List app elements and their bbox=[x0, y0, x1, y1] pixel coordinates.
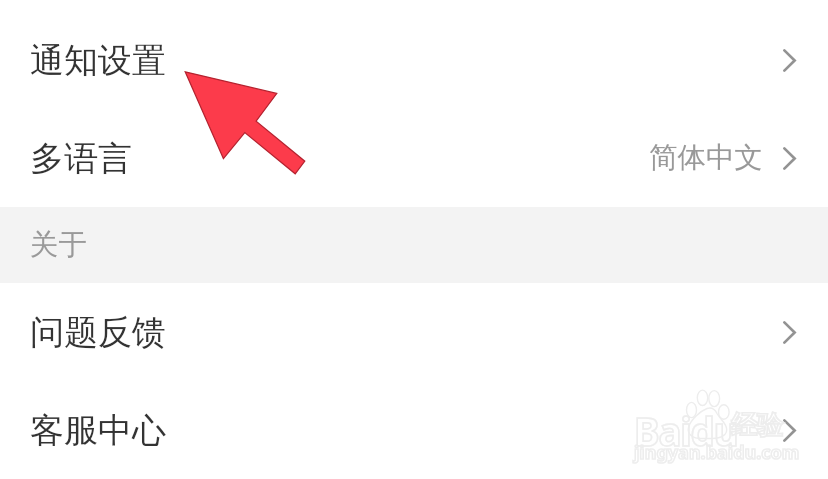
staticText: Baidu bbox=[634, 405, 738, 457]
staticText: 通知设置 bbox=[30, 39, 166, 82]
staticText: jingyan.baidu.com bbox=[634, 440, 800, 465]
staticText: 多语言 bbox=[30, 137, 132, 180]
button[interactable]: 客服中心 bbox=[0, 381, 828, 479]
other: 多语言 bbox=[783, 147, 796, 170]
staticText: 客服中心 bbox=[30, 409, 166, 452]
other: 客服中心 bbox=[783, 419, 796, 442]
other: 问题反馈 bbox=[783, 321, 796, 344]
staticText: 问题反馈 bbox=[30, 311, 166, 354]
staticText: 经验 bbox=[731, 409, 783, 442]
button[interactable]: 问题反馈 bbox=[0, 283, 828, 381]
button[interactable]: 多语言 bbox=[0, 109, 828, 207]
other: 通知设置 bbox=[783, 49, 796, 72]
staticText: 简体中文 bbox=[649, 140, 763, 176]
staticText: 关于 bbox=[30, 227, 87, 263]
button[interactable]: 通知设置 bbox=[0, 0, 828, 109]
